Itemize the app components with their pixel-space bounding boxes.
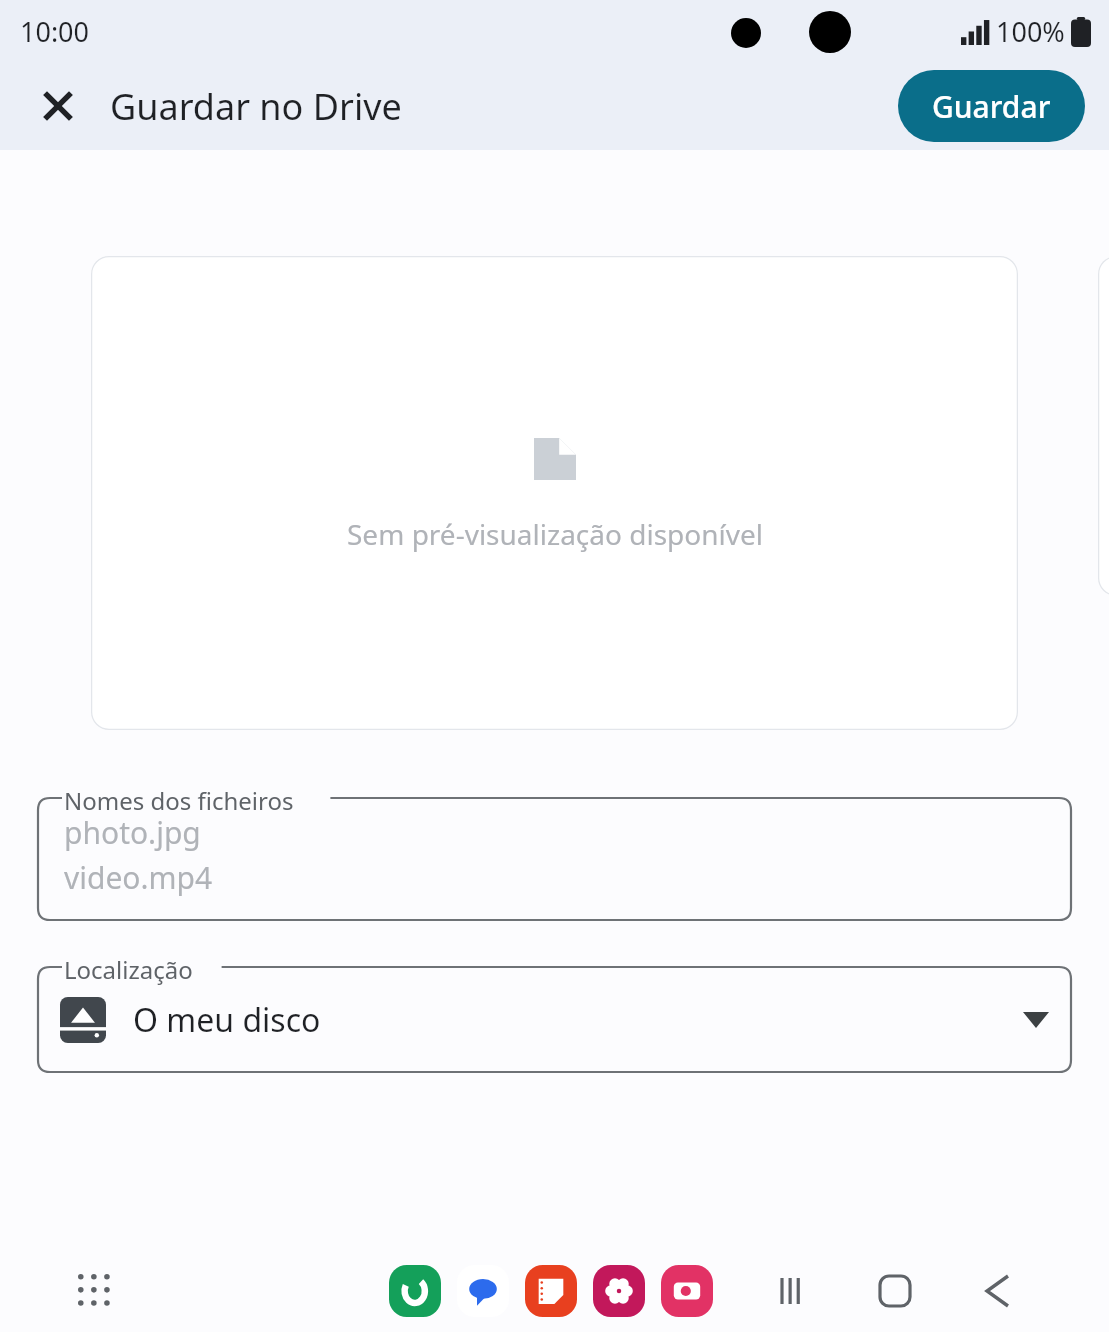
button[interactable]: Nomes dos ficheiros [38,798,1071,920]
staticText: Localização [64,953,193,986]
button[interactable]: Todas as aplicações [62,1258,128,1324]
button[interactable]: Câmara [659,1263,715,1319]
button[interactable]: Galeria [591,1263,647,1319]
button[interactable]: Localização [38,967,1071,1072]
button[interactable]: Sem pré-visualização disponível [91,256,1018,730]
staticText: Sem pré-visualização disponível [347,515,763,553]
button[interactable]: Voltar [965,1259,1029,1323]
staticText: Guardar no Drive [110,82,402,131]
staticText: photo.jpg [64,812,201,853]
staticText: video.mp4 [64,857,213,898]
button[interactable]: Notas [523,1263,579,1319]
button[interactable]: Telefone [387,1263,443,1319]
button[interactable]: Fechar [22,70,94,142]
staticText: 10:00 [20,13,90,50]
staticText: Nomes dos ficheiros [64,784,294,817]
button[interactable]: Recentes [761,1259,825,1323]
staticText: Guardar [932,86,1051,127]
button[interactable]: Guardar [898,70,1085,142]
staticText: 100% [996,13,1065,50]
button[interactable]: Início [863,1259,927,1323]
button[interactable]: Mensagens [455,1263,511,1319]
staticText: O meu disco [133,998,321,1042]
